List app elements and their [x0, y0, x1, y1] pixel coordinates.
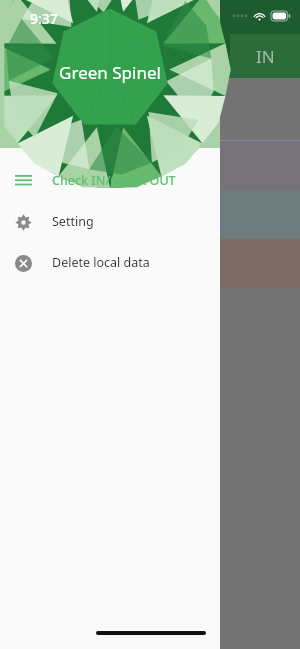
button[interactable] — [0, 239, 300, 288]
staticText: IN — [256, 45, 275, 68]
button[interactable]: Delete local data — [0, 242, 220, 283]
other: Setting — [15, 214, 32, 231]
other: Delete local data — [15, 255, 32, 272]
staticText: 9:37 — [30, 9, 58, 28]
button[interactable]: Menu — [0, 160, 220, 201]
staticText: Green Spinel — [59, 61, 161, 84]
button[interactable] — [0, 190, 300, 239]
other: Menu — [15, 175, 32, 187]
staticText: Check IN/Check OUT — [52, 172, 176, 189]
button[interactable] — [0, 141, 300, 190]
staticText: Setting — [52, 213, 94, 230]
button[interactable]: Setting — [0, 201, 220, 242]
staticText: Delete local data — [52, 254, 150, 271]
